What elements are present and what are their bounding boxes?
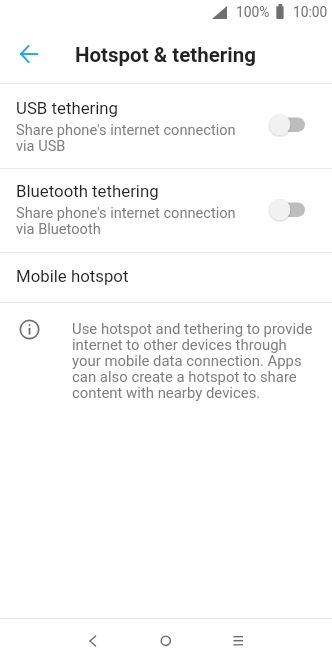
button[interactable]: Back bbox=[70, 619, 115, 664]
button[interactable]: Bluetooth tethering bbox=[0, 169, 332, 252]
button[interactable]: Navigate up bbox=[6, 31, 52, 77]
staticText: Use hotspot and tethering to provide int… bbox=[72, 320, 318, 401]
staticText: USB tethering bbox=[16, 98, 119, 118]
button[interactable]: USB tethering bbox=[0, 84, 332, 168]
staticText: Share phone's internet connection via US… bbox=[16, 121, 244, 154]
button[interactable]: Toggle bbox=[264, 189, 310, 233]
button[interactable]: Toggle bbox=[264, 104, 310, 148]
staticText: Hotspot & tethering bbox=[75, 43, 256, 67]
staticText: 10:00 bbox=[293, 4, 328, 20]
staticText: Mobile hotspot bbox=[16, 266, 129, 286]
staticText: Share phone's internet connection via Bl… bbox=[16, 204, 244, 237]
button[interactable]: Home bbox=[144, 619, 189, 664]
button[interactable]: Recent apps bbox=[216, 619, 261, 664]
staticText: 100% bbox=[236, 4, 270, 20]
button[interactable]: Mobile hotspot bbox=[0, 253, 332, 302]
staticText: Bluetooth tethering bbox=[16, 181, 159, 201]
